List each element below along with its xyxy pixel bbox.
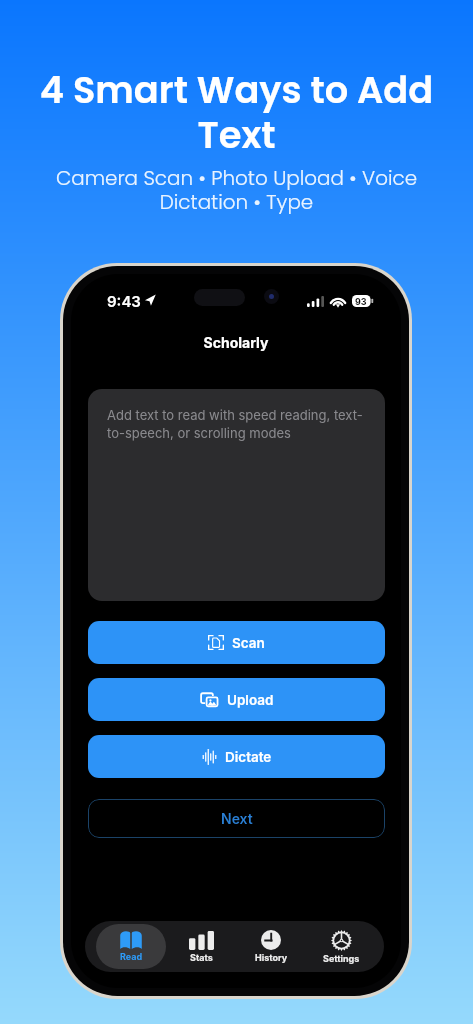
staticText: Next (221, 810, 253, 827)
staticText: Upload (227, 692, 274, 708)
button[interactable]: Add text to read with speed reading, tex… (88, 389, 385, 601)
button[interactable]: Settings (306, 924, 376, 969)
staticText: Dictate (225, 749, 272, 765)
button[interactable]: Read (96, 924, 166, 969)
staticText: Scan (232, 635, 265, 651)
button[interactable]: Dictate (88, 735, 385, 778)
staticText: Scholarly (71, 334, 401, 351)
staticText: Stats (190, 952, 213, 963)
staticText: Add text to read with speed reading, tex… (107, 407, 371, 441)
staticText: History (255, 952, 288, 963)
staticText: Camera Scan • Photo Upload • Voice Dicta… (28, 164, 445, 216)
button[interactable]: Stats (166, 924, 236, 969)
button[interactable]: History (236, 924, 306, 969)
staticText: 9:43 (107, 292, 141, 310)
staticText: Read (120, 951, 143, 962)
button[interactable]: Scan (88, 621, 385, 664)
staticText: 93 (355, 296, 367, 307)
button[interactable]: Upload (88, 678, 385, 721)
button[interactable]: Next (88, 799, 385, 838)
staticText: 4 Smart Ways to Add Text (22, 64, 451, 161)
staticText: Settings (323, 953, 360, 964)
